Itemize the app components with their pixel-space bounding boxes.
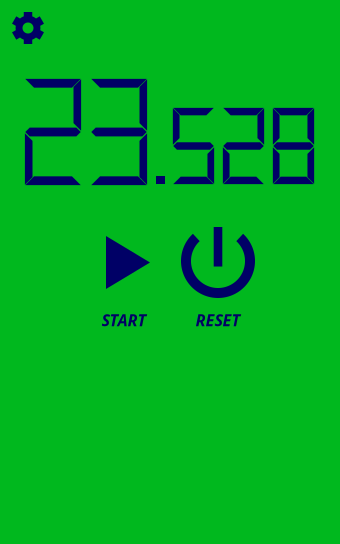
staticText: RESET bbox=[195, 309, 240, 331]
button[interactable]: RESET bbox=[170, 221, 266, 334]
button[interactable]: Settings bbox=[6, 6, 50, 50]
button[interactable]: START bbox=[80, 236, 176, 340]
staticText: START bbox=[101, 309, 146, 331]
